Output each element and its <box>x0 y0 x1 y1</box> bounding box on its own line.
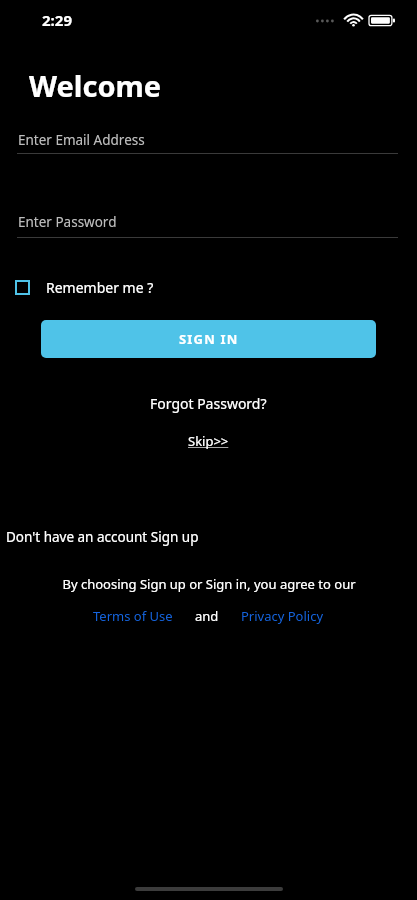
button[interactable]: Terms of Use <box>89 605 177 627</box>
button[interactable]: Remember me ? <box>15 278 154 297</box>
staticText: Welcome <box>29 66 162 105</box>
button[interactable]: SIGN IN <box>41 320 376 358</box>
button[interactable]: Don't have an account Sign up <box>0 526 417 548</box>
staticText: Enter Password <box>18 213 117 231</box>
staticText: 2:29 <box>42 10 72 30</box>
staticText: Enter Email Address <box>18 131 145 149</box>
staticText: Remember me ? <box>46 278 154 297</box>
staticText: Skip>> <box>188 432 229 450</box>
staticText: SIGN IN <box>179 330 239 348</box>
staticText: Privacy Policy <box>241 607 324 625</box>
button[interactable]: Forgot Password? <box>144 392 273 415</box>
staticText: Forgot Password? <box>150 394 267 413</box>
button[interactable]: Privacy Policy <box>237 605 328 627</box>
staticText: and <box>195 607 219 625</box>
staticText: Terms of Use <box>93 607 173 625</box>
button[interactable]: Skip>> <box>182 430 235 452</box>
staticText: Don't have an account Sign up <box>6 528 411 546</box>
staticText: By choosing Sign up or Sign in, you agre… <box>62 575 356 593</box>
